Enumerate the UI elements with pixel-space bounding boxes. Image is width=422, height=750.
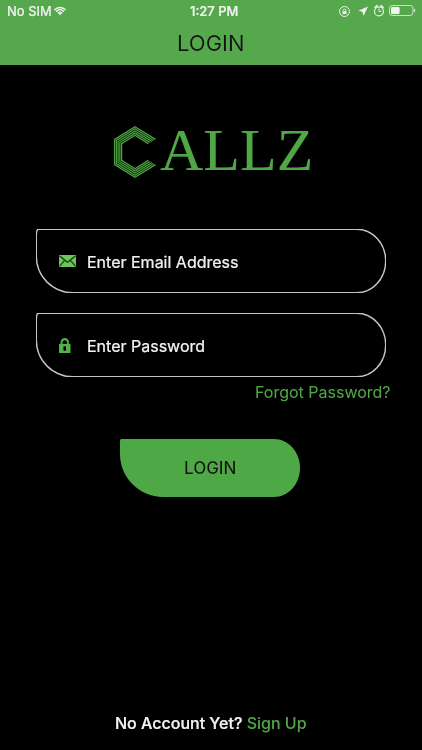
button[interactable]: No Account Yet? Sign Up: [115, 713, 307, 732]
staticText: ALLZ: [160, 117, 314, 183]
staticText: LOGIN: [177, 30, 245, 57]
button[interactable]: Email: [36, 229, 386, 293]
button[interactable]: Password: [36, 313, 386, 377]
other: Email: [59, 255, 76, 267]
staticText: No SIM: [7, 3, 52, 19]
staticText: Enter Email Address: [87, 252, 239, 271]
staticText: Enter Password: [87, 336, 206, 355]
button[interactable]: Forgot Password?: [255, 382, 391, 401]
staticText: LOGIN: [184, 458, 237, 479]
other: Password: [59, 338, 76, 353]
staticText: 1:27 PM: [190, 3, 239, 19]
button[interactable]: LOGIN: [120, 439, 300, 497]
